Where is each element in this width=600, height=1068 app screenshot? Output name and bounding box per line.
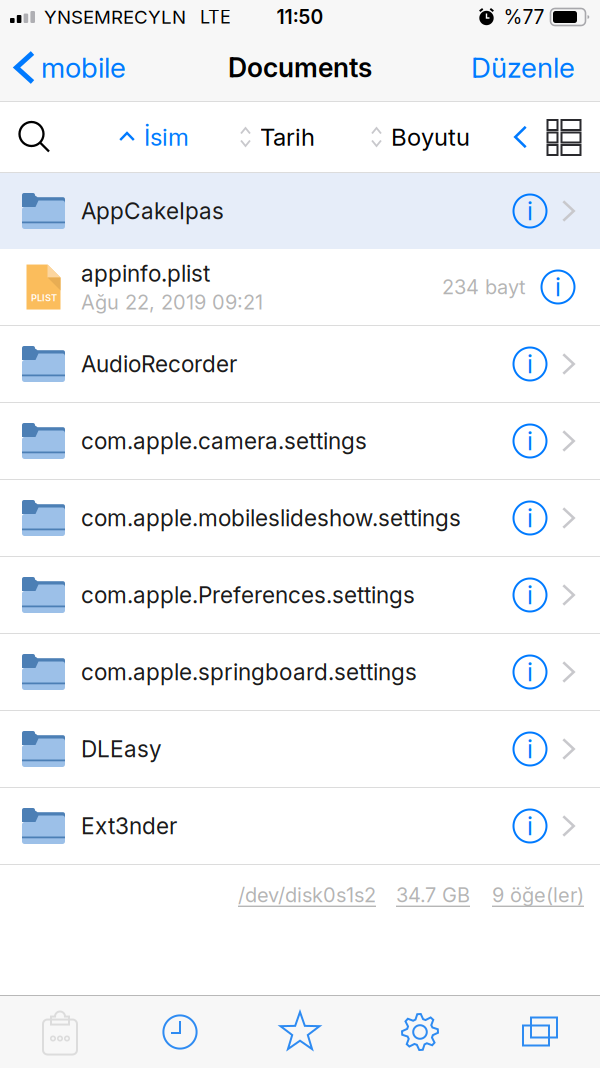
staticText: i xyxy=(527,657,533,687)
button[interactable]: 34.7 GB xyxy=(396,883,470,907)
staticText: /dev/disk0s1s2 xyxy=(238,883,376,907)
staticText: i xyxy=(527,426,533,456)
staticText: i xyxy=(527,580,533,610)
staticText: i xyxy=(527,811,533,841)
staticText: i xyxy=(527,734,533,764)
staticText: com.apple.camera.settings xyxy=(81,427,367,455)
button[interactable]: Info xyxy=(508,189,552,233)
staticText: i xyxy=(555,272,561,302)
button[interactable]: 9 öğe(ler) xyxy=(492,883,584,907)
button[interactable]: PLIST xyxy=(0,249,600,326)
button[interactable]: Clipboard xyxy=(0,996,120,1068)
staticText: i xyxy=(527,196,533,226)
button[interactable]: Düzenle xyxy=(471,39,600,95)
button[interactable]: İsim xyxy=(119,110,189,164)
staticText: i xyxy=(527,349,533,379)
button[interactable]: Info xyxy=(508,419,552,463)
staticText: com.apple.Preferences.settings xyxy=(81,581,415,609)
staticText: YNSEMRECYLN xyxy=(44,6,186,28)
staticText: 34.7 GB xyxy=(396,883,470,907)
button[interactable]: Info xyxy=(508,496,552,540)
staticText: appinfo.plist xyxy=(81,260,210,287)
staticText: Tarih xyxy=(260,122,315,151)
button[interactable]: /dev/disk0s1s2 xyxy=(238,883,376,907)
staticText: AppCakeIpas xyxy=(81,197,224,225)
button[interactable]: com.apple.mobileslideshow.settings xyxy=(0,480,600,557)
staticText: i xyxy=(527,503,533,533)
staticText: PLIST xyxy=(31,292,57,303)
button[interactable]: Info xyxy=(508,650,552,694)
staticText: DLEasy xyxy=(81,735,162,763)
button[interactable]: Boyutu xyxy=(371,110,470,164)
button[interactable]: View mode xyxy=(546,110,582,164)
button[interactable]: Info xyxy=(536,265,580,309)
staticText: 9 öğe(ler) xyxy=(492,883,584,907)
button[interactable]: AudioRecorder xyxy=(0,326,600,403)
button[interactable]: Info xyxy=(508,727,552,771)
button[interactable]: DLEasy xyxy=(0,711,600,788)
button[interactable]: Ext3nder xyxy=(0,788,600,865)
staticText: İsim xyxy=(144,122,189,151)
staticText: AudioRecorder xyxy=(81,350,237,378)
button[interactable]: Favorites xyxy=(240,996,360,1068)
button[interactable]: Info xyxy=(508,342,552,386)
staticText: Düzenle xyxy=(471,51,575,84)
button[interactable]: Settings xyxy=(360,996,480,1068)
staticText: 234 bayt xyxy=(442,275,526,299)
staticText: Ext3nder xyxy=(81,812,177,840)
staticText: Ağu 22, 2019 09:21 xyxy=(81,290,263,314)
button[interactable]: Previous xyxy=(514,110,527,164)
button[interactable]: com.apple.springboard.settings xyxy=(0,634,600,711)
button[interactable]: Tarih xyxy=(240,110,315,164)
staticText: LTE xyxy=(200,6,231,28)
button[interactable]: Search xyxy=(17,110,52,164)
button[interactable]: AppCakeIpas xyxy=(0,173,600,249)
staticText: Documents xyxy=(228,51,372,84)
staticText: %77 xyxy=(503,5,544,29)
staticText: Boyutu xyxy=(391,122,470,151)
staticText: 11:50 xyxy=(276,5,323,29)
staticText: mobile xyxy=(41,51,126,84)
staticText: com.apple.springboard.settings xyxy=(81,658,417,686)
button[interactable]: com.apple.Preferences.settings xyxy=(0,557,600,634)
button[interactable]: mobile xyxy=(0,39,126,95)
button[interactable]: Info xyxy=(508,804,552,848)
button[interactable]: com.apple.camera.settings xyxy=(0,403,600,480)
button[interactable]: Recent xyxy=(120,996,240,1068)
staticText: com.apple.mobileslideshow.settings xyxy=(81,504,461,532)
button[interactable]: Windows xyxy=(480,996,600,1068)
button[interactable]: Info xyxy=(508,573,552,617)
